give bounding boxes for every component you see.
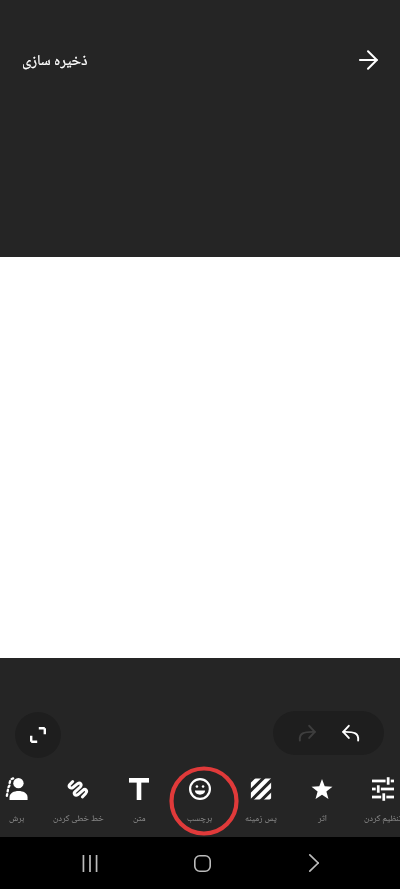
button[interactable]: ذخیره سازی (22, 49, 88, 75)
button[interactable]: Back (290, 846, 338, 880)
staticText: تنظیم کردن (364, 811, 400, 826)
button[interactable]: برش (0, 769, 47, 836)
staticText: برش (9, 811, 25, 826)
button[interactable]: تنظیم کردن (353, 769, 400, 836)
button[interactable]: خط خطی کردن (48, 769, 108, 836)
staticText: پس زمینه (245, 811, 277, 826)
button[interactable]: Recent apps (66, 846, 114, 880)
button[interactable]: برچسب (170, 769, 230, 836)
button[interactable]: Redo (283, 711, 332, 755)
staticText: خط خطی کردن (53, 811, 104, 826)
button[interactable]: Home (178, 846, 226, 880)
button[interactable]: Undo (326, 711, 375, 755)
button[interactable]: Next (348, 40, 388, 80)
button[interactable]: متن (109, 769, 169, 836)
button[interactable]: Expand (15, 712, 61, 758)
button[interactable]: پس زمینه (231, 769, 291, 836)
staticText: متن (133, 811, 146, 826)
staticText: اثر (318, 811, 327, 826)
button[interactable]: اثر (292, 769, 352, 836)
staticText: برچسب (187, 811, 213, 826)
